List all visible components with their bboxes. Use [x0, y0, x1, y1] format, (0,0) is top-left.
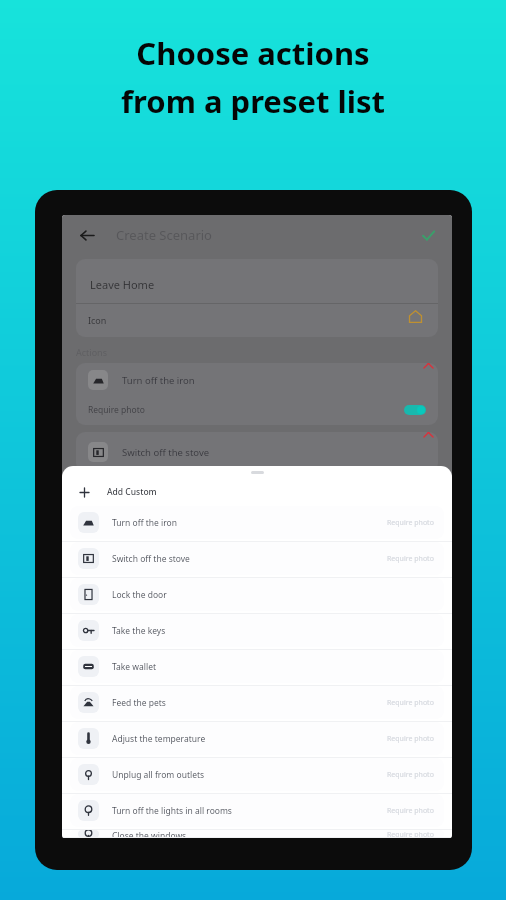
staticText: Require photo: [387, 830, 434, 838]
staticText: Switch off the stove: [112, 553, 190, 565]
button[interactable]: Switch off the stove: [76, 432, 438, 472]
button[interactable]: Close the windows: [70, 830, 444, 838]
staticText: from a preset list: [121, 80, 385, 122]
button[interactable]: Take wallet: [70, 650, 444, 683]
staticText: Add Custom: [107, 486, 157, 498]
staticText: Icon: [88, 314, 107, 326]
staticText: Feed the pets: [112, 697, 166, 709]
staticText: Turn off the lights in all rooms: [112, 805, 232, 817]
staticText: Take wallet: [112, 661, 157, 673]
staticText: Adjust the temperature: [112, 733, 206, 745]
button[interactable]: Feed the pets: [70, 686, 444, 719]
staticText: Leave Home: [90, 277, 155, 292]
button[interactable]: Turn off the iron: [70, 506, 444, 539]
button[interactable]: Switch off the stove: [70, 542, 444, 575]
staticText: Choose actions: [136, 32, 370, 74]
button[interactable]: Save: [416, 223, 440, 247]
staticText: Require photo: [387, 518, 434, 528]
staticText: Require photo: [387, 770, 434, 780]
button[interactable]: Adjust the temperature: [70, 722, 444, 755]
staticText: Actions: [76, 346, 107, 358]
staticText: Require photo: [387, 698, 434, 708]
button[interactable]: Add Custom: [62, 478, 452, 506]
staticText: Require photo: [387, 806, 434, 816]
button[interactable]: Unplug all from outlets: [70, 758, 444, 791]
button[interactable]: Back: [74, 222, 100, 248]
staticText: Take the keys: [112, 625, 166, 637]
button[interactable]: Turn off the lights in all rooms: [70, 794, 444, 827]
staticText: Create Scenario: [116, 226, 212, 244]
staticText: Require photo: [387, 734, 434, 744]
staticText: Turn off the iron: [122, 374, 195, 387]
button[interactable]: Lock the door: [70, 578, 444, 611]
button[interactable]: Leave Home: [76, 259, 438, 337]
staticText: Turn off the iron: [112, 517, 177, 529]
staticText: Require photo: [88, 404, 145, 416]
staticText: Switch off the stove: [122, 446, 210, 459]
staticText: Lock the door: [112, 589, 167, 601]
button[interactable]: Require photo toggle: [404, 405, 426, 415]
staticText: Close the windows: [112, 830, 187, 838]
button[interactable]: Turn off the iron: [76, 363, 438, 425]
staticText: Require photo: [387, 554, 434, 564]
staticText: Unplug all from outlets: [112, 769, 205, 781]
button[interactable]: Take the keys: [70, 614, 444, 647]
